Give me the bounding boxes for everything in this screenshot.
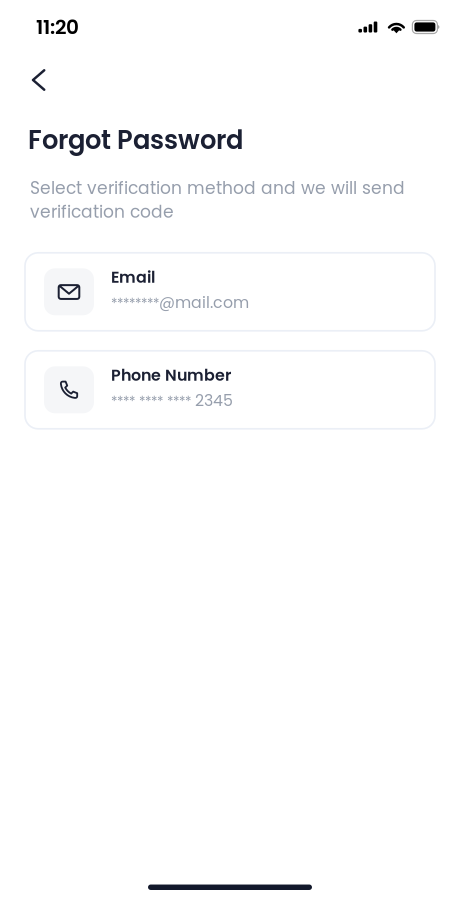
staticText: **** **** ****: [111, 393, 195, 411]
staticText: 11:20: [36, 13, 79, 41]
staticText: Forgot Password: [28, 122, 243, 158]
staticText: Phone Number: [111, 364, 231, 386]
staticText: @mail.com: [159, 291, 249, 313]
staticText: Select verification method and we will s…: [30, 176, 405, 224]
staticText: 2345: [195, 389, 233, 411]
staticText: Email: [111, 266, 155, 288]
button[interactable]: Phone Number: [25, 351, 435, 429]
button[interactable]: Email: [25, 253, 435, 331]
button[interactable]: Back: [0, 63, 71, 97]
staticText: ********: [111, 295, 159, 313]
